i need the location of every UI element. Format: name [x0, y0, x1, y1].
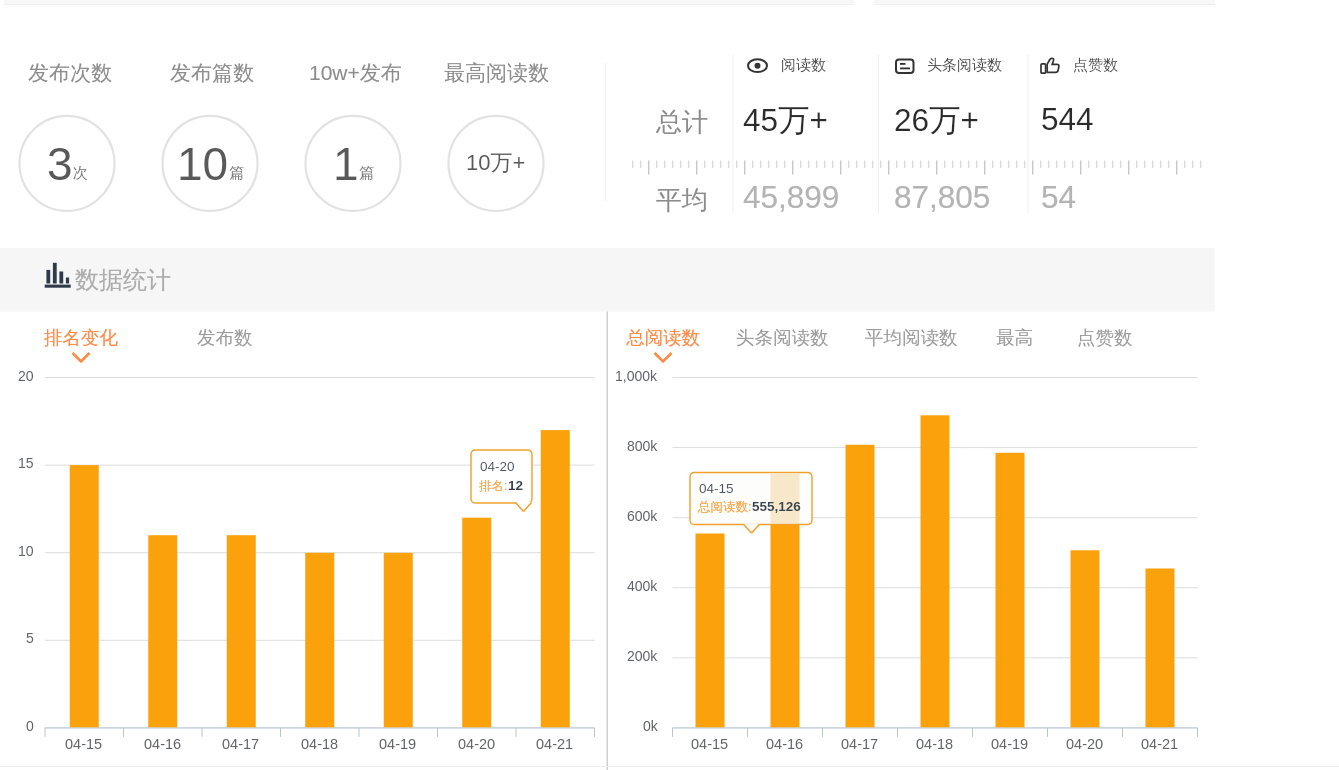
staticText: 篇	[229, 164, 244, 183]
staticText: 发布次数	[28, 60, 112, 86]
staticText: 总计	[656, 106, 708, 139]
staticText: 04-18	[916, 736, 954, 752]
staticText: 04-17	[841, 736, 879, 752]
staticText: 04-20	[480, 459, 515, 474]
staticText: 头条阅读数	[927, 56, 1002, 75]
staticText: 10万+	[466, 149, 526, 177]
button[interactable]: 头条阅读数	[736, 326, 829, 349]
staticText: 45万+	[743, 101, 828, 141]
staticText: 平均阅读数	[865, 326, 958, 349]
staticText: 04-20	[1066, 736, 1104, 752]
staticText: 平均	[656, 184, 708, 217]
staticText: 04-20	[458, 736, 496, 752]
staticText: 04-15	[65, 736, 103, 752]
staticText: 20	[18, 368, 34, 384]
staticText: 数据统计	[75, 265, 171, 295]
button[interactable]: 1	[305, 115, 401, 211]
staticText: 544	[1041, 101, 1094, 136]
staticText: 1,000k	[615, 368, 658, 384]
staticText: 26万+	[894, 101, 979, 141]
button[interactable]: 3	[19, 115, 115, 211]
staticText: 04-16	[766, 736, 804, 752]
button[interactable]: 发布数	[197, 326, 253, 349]
staticText: 发布数	[197, 326, 253, 349]
staticText: 最高阅读数	[444, 60, 549, 86]
staticText: 04-15	[699, 481, 734, 496]
button[interactable]: 平均阅读数	[865, 326, 958, 349]
staticText: 12	[508, 478, 524, 493]
staticText: 3	[47, 138, 73, 189]
staticText: 总阅读数	[626, 326, 700, 349]
staticText: 04-21	[536, 736, 574, 752]
staticText: 15	[18, 455, 34, 471]
staticText: 45,899	[743, 179, 840, 214]
staticText: 10	[177, 138, 229, 189]
staticText: 点赞数	[1077, 326, 1133, 349]
button[interactable]: 总阅读数	[626, 326, 700, 349]
staticText: 次	[73, 164, 88, 183]
staticText: 800k	[627, 438, 658, 454]
staticText: 600k	[627, 508, 658, 524]
button[interactable]: 10万+	[448, 115, 544, 211]
staticText: 总阅读数:	[698, 499, 752, 515]
staticText: 400k	[627, 578, 658, 594]
button[interactable]: 排名变化	[44, 326, 118, 349]
button[interactable]: 点赞数	[1077, 326, 1133, 349]
staticText: 0	[26, 718, 34, 734]
staticText: 54	[1041, 179, 1077, 214]
staticText: 篇	[359, 164, 374, 183]
staticText: 排名变化	[44, 326, 118, 349]
staticText: 04-19	[379, 736, 417, 752]
staticText: 04-16	[144, 736, 182, 752]
staticText: 04-17	[222, 736, 260, 752]
staticText: 10w+发布	[309, 60, 402, 86]
staticText: 200k	[627, 648, 658, 664]
staticText: 5	[26, 630, 34, 646]
staticText: 04-21	[1141, 736, 1179, 752]
staticText: 04-15	[691, 736, 729, 752]
staticText: 87,805	[894, 179, 991, 214]
staticText: 发布篇数	[170, 60, 254, 86]
staticText: 最高	[996, 326, 1033, 349]
staticText: 头条阅读数	[736, 326, 829, 349]
button[interactable]: 10	[162, 115, 258, 211]
staticText: 10	[18, 543, 34, 559]
staticText: 555,126	[752, 499, 801, 514]
staticText: 0k	[643, 718, 658, 734]
staticText: 1	[333, 138, 359, 189]
staticText: 04-19	[991, 736, 1029, 752]
staticText: 排名:	[479, 478, 508, 494]
staticText: 04-18	[301, 736, 339, 752]
staticText: 点赞数	[1073, 56, 1118, 75]
staticText: 阅读数	[781, 56, 826, 75]
button[interactable]: 最高	[996, 326, 1033, 349]
